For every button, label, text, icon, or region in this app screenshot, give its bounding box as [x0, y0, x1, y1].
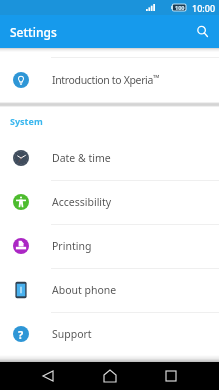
button[interactable]: ?: [0, 312, 219, 356]
staticText: Settings: [10, 24, 57, 40]
button[interactable]: About phone: [0, 268, 219, 312]
staticText: System: [10, 115, 43, 127]
staticText: 100: [175, 4, 185, 11]
button[interactable]: Introduction to Xperia™: [0, 57, 219, 102]
staticText: 10:00: [192, 2, 216, 14]
button[interactable]: Search: [186, 15, 219, 48]
button[interactable]: Date & time: [0, 136, 219, 180]
staticText: Introduction to Xperia™: [52, 72, 160, 87]
button[interactable]: Recent apps: [140, 362, 202, 390]
button[interactable]: Accessibility: [0, 180, 219, 224]
button[interactable]: Home: [79, 362, 140, 390]
staticText: Date & time: [52, 151, 111, 165]
staticText: ?: [18, 327, 24, 342]
button[interactable]: Printing: [0, 224, 219, 268]
staticText: Printing: [52, 239, 92, 253]
staticText: Support: [52, 327, 92, 341]
staticText: Accessibility: [52, 195, 112, 209]
button[interactable]: Back: [17, 362, 79, 390]
staticText: About phone: [52, 283, 117, 297]
